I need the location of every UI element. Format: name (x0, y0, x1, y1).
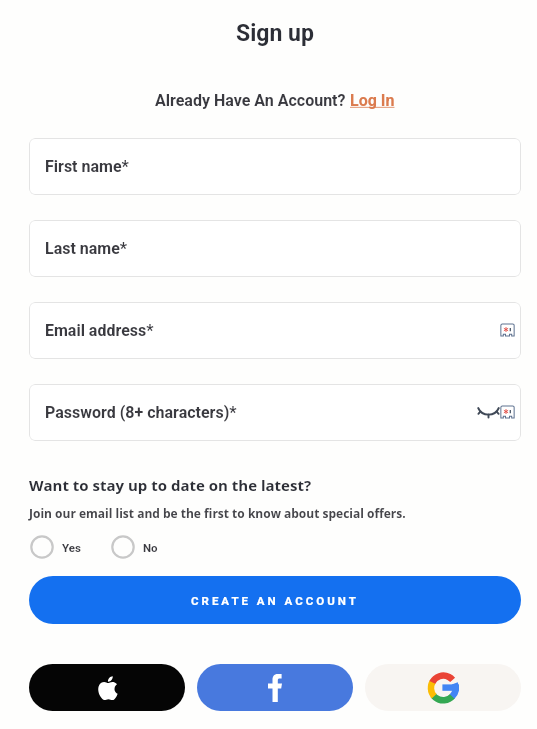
staticText: CREATE AN ACCOUNT (191, 594, 359, 607)
button[interactable]: Last name* (29, 220, 521, 277)
button[interactable]: Password (8+ characters)* (29, 384, 521, 441)
button[interactable]: CREATE AN ACCOUNT (29, 576, 521, 624)
staticText: Sign up (236, 20, 314, 47)
button[interactable]: Sign in with Apple (29, 664, 185, 711)
button[interactable]: No (111, 535, 158, 559)
staticText: Want to stay up to date on the latest? (29, 475, 312, 495)
staticText: Email address* (45, 321, 154, 340)
staticText: Already Have An Account? (155, 91, 350, 110)
staticText: Password (8+ characters)* (45, 403, 237, 422)
staticText: Log In (350, 91, 395, 110)
staticText: No (143, 541, 158, 554)
staticText: Yes (62, 541, 81, 554)
staticText: Join our email list and be the first to … (29, 505, 406, 521)
button[interactable]: Sign in with Facebook (197, 664, 353, 711)
button[interactable]: Log In (350, 91, 395, 110)
staticText: First name* (45, 157, 129, 176)
button[interactable]: Yes (30, 535, 81, 559)
button[interactable]: Email address* (29, 302, 521, 359)
button[interactable]: Sign in with Google (365, 664, 521, 711)
button[interactable]: First name* (29, 138, 521, 195)
staticText: Last name* (45, 239, 128, 258)
